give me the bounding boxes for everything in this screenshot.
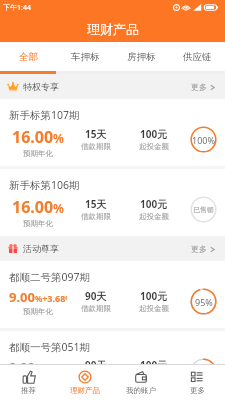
staticText: 预期年化	[23, 219, 53, 228]
staticText: 起投金额	[139, 142, 169, 151]
staticText: 借款期限	[81, 304, 111, 313]
button[interactable]: 新手标第107期	[0, 99, 225, 166]
staticText: 新手标第106期	[9, 178, 80, 192]
staticText: 预期年化	[23, 307, 53, 316]
staticText: 100元	[140, 127, 168, 141]
button[interactable]: 更多	[189, 242, 217, 256]
staticText: 车押标	[71, 51, 100, 63]
staticText: 活动尊享	[23, 243, 59, 254]
button[interactable]: 我的账户	[113, 365, 169, 400]
staticText: 90天	[85, 289, 107, 303]
staticText: 预期年化	[23, 149, 53, 158]
staticText: 供应链	[183, 51, 212, 63]
staticText: 100%	[192, 134, 215, 146]
button[interactable]: 都顺二号第097期	[0, 261, 225, 328]
button[interactable]: 理财产品	[57, 365, 113, 400]
staticText: 理财产品	[70, 386, 100, 395]
staticText: 9.00%+3.68%	[9, 358, 67, 364]
button[interactable]: 都顺一号第051期	[0, 331, 225, 364]
button[interactable]: 推荐	[0, 365, 57, 400]
staticText: 更多	[190, 386, 205, 395]
staticText: 15天	[85, 127, 107, 141]
staticText: 理财产品	[87, 21, 139, 37]
staticText: 都顺一号第051期	[9, 340, 91, 354]
staticText: 90天	[85, 358, 107, 364]
staticText: 100元	[140, 358, 168, 364]
staticText: 起投金额	[139, 304, 169, 313]
staticText: 已售罄	[193, 205, 214, 214]
staticText: 特权专享	[23, 81, 59, 92]
staticText: 16.00%	[12, 196, 64, 218]
staticText: 都顺二号第097期	[9, 270, 91, 284]
staticText: 75%	[195, 366, 213, 378]
button[interactable]: 车押标	[57, 42, 113, 71]
staticText: 下午1:44	[3, 3, 31, 13]
staticText: 100元	[140, 197, 168, 211]
button[interactable]: 供应链	[169, 42, 225, 71]
button[interactable]: 房押标	[113, 42, 169, 71]
staticText: 借款期限	[81, 212, 111, 221]
staticText: 借款期限	[81, 142, 111, 151]
staticText: 95%	[195, 296, 213, 308]
button[interactable]: 全部	[0, 42, 57, 71]
button[interactable]: 更多	[169, 365, 225, 400]
staticText: 更多	[191, 82, 207, 92]
staticText: 更多	[191, 244, 207, 254]
staticText: 起投金额	[139, 212, 169, 221]
staticText: 我的账户	[126, 386, 156, 395]
staticText: 新手标第107期	[9, 108, 80, 122]
staticText: 15天	[85, 197, 107, 211]
staticText: 16.00%	[12, 126, 64, 148]
staticText: 推荐	[21, 386, 36, 395]
staticText: 100元	[140, 289, 168, 303]
button[interactable]: 新手标第106期	[0, 169, 225, 236]
staticText: 9.00%+3.68%	[9, 288, 67, 306]
staticText: 房押标	[127, 51, 156, 63]
staticText: 全部	[19, 51, 38, 63]
button[interactable]: 更多	[189, 80, 217, 94]
